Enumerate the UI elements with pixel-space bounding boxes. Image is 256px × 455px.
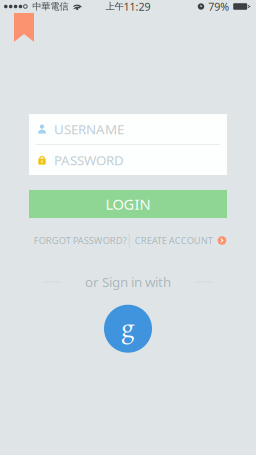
staticText: 中華電信 bbox=[32, 1, 68, 12]
button[interactable]: PASSWORD bbox=[29, 145, 227, 175]
button[interactable]: CREATE ACCOUNT bbox=[130, 233, 226, 248]
staticText: LOGIN bbox=[105, 194, 150, 214]
staticText: USERNAME bbox=[54, 120, 124, 138]
staticText: g bbox=[121, 307, 134, 345]
staticText: FORGOT PASSWORD? bbox=[34, 234, 127, 247]
staticText: PASSWORD bbox=[54, 151, 124, 169]
button[interactable]: LOGIN bbox=[29, 190, 227, 218]
staticText: or Sign in with bbox=[85, 273, 171, 291]
button[interactable]: Sign in with Google bbox=[104, 305, 152, 353]
button[interactable]: USERNAME bbox=[29, 114, 227, 144]
staticText: 上午 bbox=[105, 1, 123, 12]
staticText: CREATE ACCOUNT bbox=[135, 234, 213, 247]
staticText: 11:29 bbox=[123, 0, 150, 14]
button[interactable]: FORGOT PASSWORD? bbox=[34, 233, 127, 248]
staticText: 79% bbox=[208, 0, 229, 14]
